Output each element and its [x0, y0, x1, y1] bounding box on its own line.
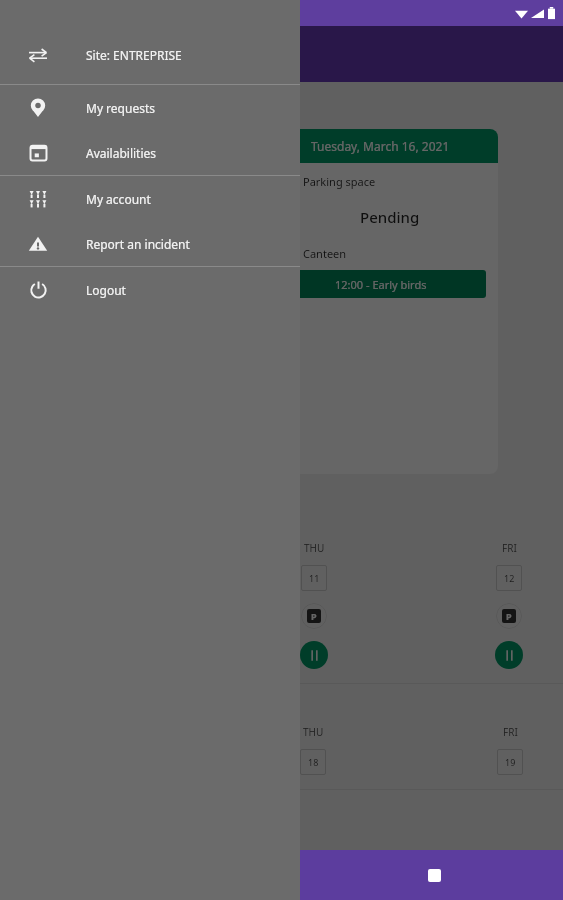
staticText: Parking space	[52, 174, 125, 189]
staticText: P	[31, 174, 38, 189]
staticText: P	[311, 610, 317, 622]
staticText: Parking space	[303, 174, 376, 189]
staticText: Hello, Jim Boltman	[16, 90, 199, 119]
staticText: FRI	[503, 725, 518, 739]
button[interactable]: Site: ENTREPRISE	[0, 26, 300, 84]
button[interactable]: 11	[301, 565, 327, 591]
staticText: Pending	[360, 207, 420, 227]
button[interactable]: Recents	[411, 852, 457, 898]
staticText: P	[506, 610, 512, 622]
button[interactable]: Home	[259, 852, 305, 898]
staticText: P	[282, 174, 289, 189]
button[interactable]: Availabilities	[0, 130, 300, 175]
staticText: Site: ENTREPRISE	[86, 47, 182, 63]
staticText: Availabilities	[86, 145, 157, 161]
staticText: 19	[505, 756, 516, 768]
staticText: Logout	[86, 282, 126, 298]
button[interactable]: 19	[497, 749, 523, 775]
button[interactable]: 18	[300, 749, 326, 775]
staticText: 11	[309, 572, 320, 584]
staticText: AM	[28, 203, 40, 213]
staticText: Canteen	[303, 246, 347, 261]
staticText: My requests	[86, 100, 156, 116]
button[interactable]: 12:00 - Early birds	[275, 270, 486, 298]
button[interactable]: Canteen	[300, 641, 328, 669]
staticText: THU	[303, 725, 324, 739]
staticText: Report an incident	[86, 236, 190, 252]
button[interactable]: Tuesday, March 16, 2021	[263, 129, 498, 474]
button[interactable]: Monday, March 15, 2021	[12, 129, 247, 474]
button[interactable]: Parking	[496, 603, 522, 629]
staticText: 12	[504, 572, 515, 584]
staticText: Canteen	[52, 247, 96, 262]
button[interactable]: Canteen	[495, 641, 523, 669]
staticText: FRI	[502, 541, 517, 555]
staticText: Monday, March 15, 2021	[61, 138, 199, 154]
staticText: Tuesday, March 16, 2021	[311, 138, 450, 154]
staticText: 12:00 - Early birds	[335, 277, 427, 292]
staticText: My account	[86, 191, 151, 207]
button[interactable]: ...	[24, 271, 235, 299]
button[interactable]: My account	[0, 176, 300, 221]
staticText: THU	[304, 541, 325, 555]
staticText: 18	[308, 756, 319, 768]
button[interactable]: 12	[496, 565, 522, 591]
button[interactable]: Report an incident	[0, 221, 300, 266]
button[interactable]: Parking	[301, 603, 327, 629]
staticText: ...	[125, 278, 134, 293]
button[interactable]: My requests	[0, 85, 300, 130]
button[interactable]: Logout	[0, 267, 300, 312]
